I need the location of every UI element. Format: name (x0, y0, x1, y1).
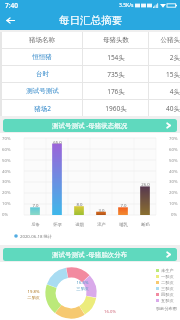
staticText: 2头 (169, 53, 180, 62)
staticText: 猪场2 (34, 104, 51, 113)
staticText: 26.0 (141, 181, 150, 187)
staticText: 五胎次 (161, 298, 174, 303)
staticText: 20% (2, 189, 11, 195)
staticText: 65.0 (53, 139, 62, 145)
staticText: 后备 (31, 222, 40, 227)
staticText: 怀孕 (53, 222, 62, 227)
button[interactable]: 猪场名称 (0, 32, 180, 48)
staticText: 0% (171, 211, 178, 217)
staticText: 进期 (75, 222, 84, 227)
staticText: 断奶 (141, 222, 150, 227)
staticText: 每日汇总摘要 (59, 14, 122, 27)
staticText: 母猪头数 (103, 36, 129, 44)
staticText: 10% (169, 200, 178, 206)
staticText: 测试号测试 (26, 87, 59, 95)
staticText: 16.0% (104, 309, 116, 315)
staticText: 70% (169, 135, 178, 141)
staticText: 三胎次 (161, 286, 174, 291)
staticText: 二胎次 (161, 280, 174, 285)
staticText: 台时 (36, 70, 49, 78)
staticText: 胎龄分布图 (156, 306, 177, 311)
staticText: 19.8% 二胎次 (27, 289, 40, 300)
staticText: 40头 (166, 104, 180, 113)
staticText: 四胎次 (161, 292, 174, 297)
staticText: 15头 (166, 70, 180, 79)
staticText: 30% (2, 178, 11, 184)
button[interactable]: 测试号测试 -母猪状态概况 (3, 119, 177, 132)
staticText: 猪场名称 (29, 36, 55, 44)
staticText: 恒恒猪 (32, 53, 52, 61)
staticText: 20% (169, 189, 178, 195)
staticText: 2020-06-18 统计 (20, 233, 53, 239)
staticText: 60% (169, 146, 178, 152)
staticText: 3.5K/s (119, 2, 134, 9)
button[interactable]: Back (2, 12, 19, 29)
staticText: 50% (2, 157, 11, 163)
staticText: 测试号测试 -母猪胎次分布 (52, 250, 128, 259)
staticText: 40% (2, 168, 11, 174)
staticText: 70% (2, 135, 11, 141)
staticText: 公猪头 (160, 36, 180, 44)
staticText: 16.5% 三胎次 (76, 280, 89, 291)
button[interactable]: 恒恒猪 (0, 49, 180, 65)
staticText: 735头 (107, 70, 125, 79)
staticText: 3.0 (98, 207, 105, 213)
staticText: 8.0 (76, 201, 83, 207)
staticText: 4头 (169, 87, 180, 96)
button[interactable]: 台时 (0, 66, 180, 82)
staticText: 未生产 (161, 268, 174, 273)
staticText: 测试号测试 -母猪状态概况 (52, 121, 128, 130)
staticText: 176头 (107, 87, 125, 96)
staticText: 哺乳 (119, 222, 128, 227)
staticText: 10% (2, 200, 11, 206)
staticText: 154头 (107, 53, 125, 62)
staticText: 流产 (97, 222, 106, 227)
staticText: 1960头 (105, 104, 127, 113)
staticText: 40% (169, 168, 178, 174)
staticText: 50% (169, 157, 178, 163)
staticText: 30% (169, 178, 178, 184)
staticText: 7:40 (5, 1, 18, 10)
staticText: 7.0 (32, 202, 39, 208)
staticText: 60% (2, 146, 11, 152)
button[interactable]: 测试号测试 (0, 83, 180, 99)
staticText: 一胎次 (161, 274, 174, 279)
staticText: 7.0 (120, 202, 127, 208)
button[interactable]: 猪场2 (0, 100, 180, 116)
staticText: 0% (2, 211, 9, 217)
button[interactable]: 测试号测试 -母猪胎次分布 (3, 248, 177, 261)
